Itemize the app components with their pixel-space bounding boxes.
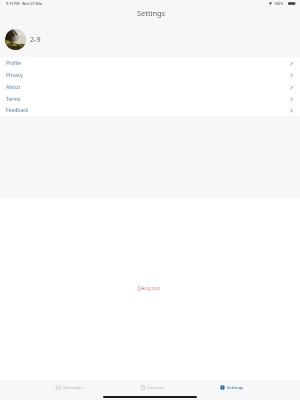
staticText: Privacy (6, 72, 23, 79)
button[interactable]: Contacts (111, 380, 194, 395)
button[interactable]: Feedback (0, 105, 300, 116)
staticText: Wed 27 Mar (22, 1, 43, 6)
button[interactable]: Profile (0, 57, 300, 69)
staticText: Settings (137, 8, 166, 18)
staticText: Terms (6, 96, 21, 103)
staticText: Messages (63, 385, 83, 391)
button[interactable]: Log out (134, 282, 166, 295)
staticText: Contacts (147, 385, 165, 391)
button[interactable]: About (0, 81, 300, 93)
staticText: Profile (6, 60, 22, 67)
button[interactable]: Privacy (0, 69, 300, 81)
button[interactable]: Messages (28, 380, 111, 395)
other: Battery (288, 2, 296, 5)
staticText: 9:13 PM (6, 1, 20, 6)
other: Wi-Fi (269, 2, 272, 5)
staticText: 2-9 (30, 34, 41, 44)
staticText: About (6, 84, 21, 91)
button[interactable]: 2-9 (0, 28, 300, 50)
staticText: Feedback (6, 107, 29, 114)
staticText: Settings (227, 385, 244, 391)
staticText: Log out (142, 285, 160, 292)
button[interactable]: Settings (190, 380, 273, 395)
button[interactable]: Terms (0, 93, 300, 105)
staticText: 100% (274, 1, 284, 6)
